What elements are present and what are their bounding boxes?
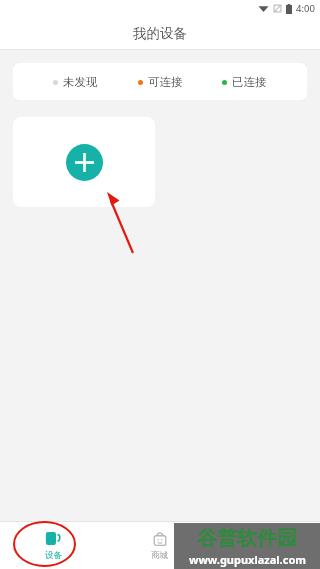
button[interactable]: 添加设备 — [13, 117, 155, 207]
staticText: www.gupuxlazal.com — [189, 552, 306, 567]
staticText: 可连接 — [148, 75, 183, 89]
button[interactable]: 饮水 — [213, 522, 320, 569]
button[interactable]: 未发现 — [13, 63, 307, 100]
staticText: 谷普软件园 — [197, 526, 297, 551]
staticText: 未发现 — [63, 75, 98, 89]
button[interactable]: 商城 — [106, 522, 213, 569]
staticText: 设备 — [45, 550, 62, 561]
staticText: 饮水 — [258, 550, 275, 561]
button[interactable]: 设备 — [0, 522, 106, 569]
staticText: 商城 — [151, 550, 168, 561]
staticText: 我的设备 — [133, 25, 187, 42]
staticText: 4:00 — [296, 2, 315, 15]
staticText: 已连接 — [232, 75, 267, 89]
